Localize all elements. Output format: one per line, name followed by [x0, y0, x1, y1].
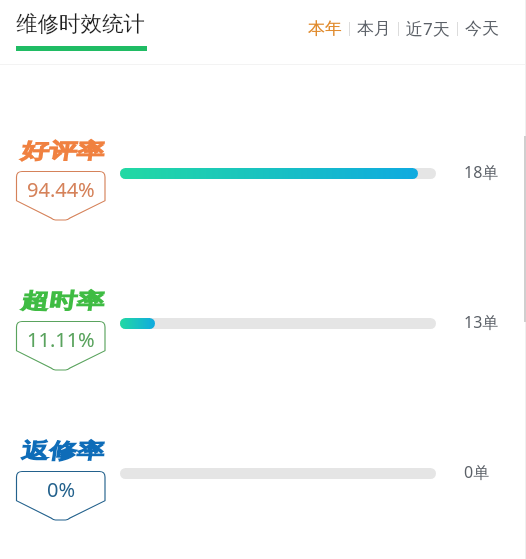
- staticText: 18单: [464, 161, 499, 183]
- staticText: 好评率: [20, 138, 103, 164]
- button[interactable]: 好评率: [0, 130, 526, 280]
- staticText: 维修时效统计: [16, 10, 145, 37]
- button[interactable]: 本月: [354, 18, 394, 39]
- staticText: 11.11%: [27, 326, 95, 353]
- staticText: 返修率: [20, 438, 103, 464]
- button[interactable]: 超时率: [0, 280, 526, 430]
- staticText: 本年: [308, 18, 342, 39]
- button[interactable]: 今天: [462, 18, 502, 39]
- staticText: 近7天: [406, 17, 450, 40]
- button[interactable]: 近7天: [403, 17, 453, 40]
- staticText: 94.44%: [27, 176, 95, 203]
- staticText: 今天: [465, 18, 499, 39]
- staticText: 13单: [464, 311, 499, 333]
- staticText: 0%: [47, 476, 76, 503]
- staticText: 超时率: [20, 288, 103, 314]
- staticText: 0单: [464, 461, 490, 483]
- staticText: 本月: [357, 18, 391, 39]
- button[interactable]: 本年: [305, 18, 345, 39]
- button[interactable]: 返修率: [0, 430, 526, 559]
